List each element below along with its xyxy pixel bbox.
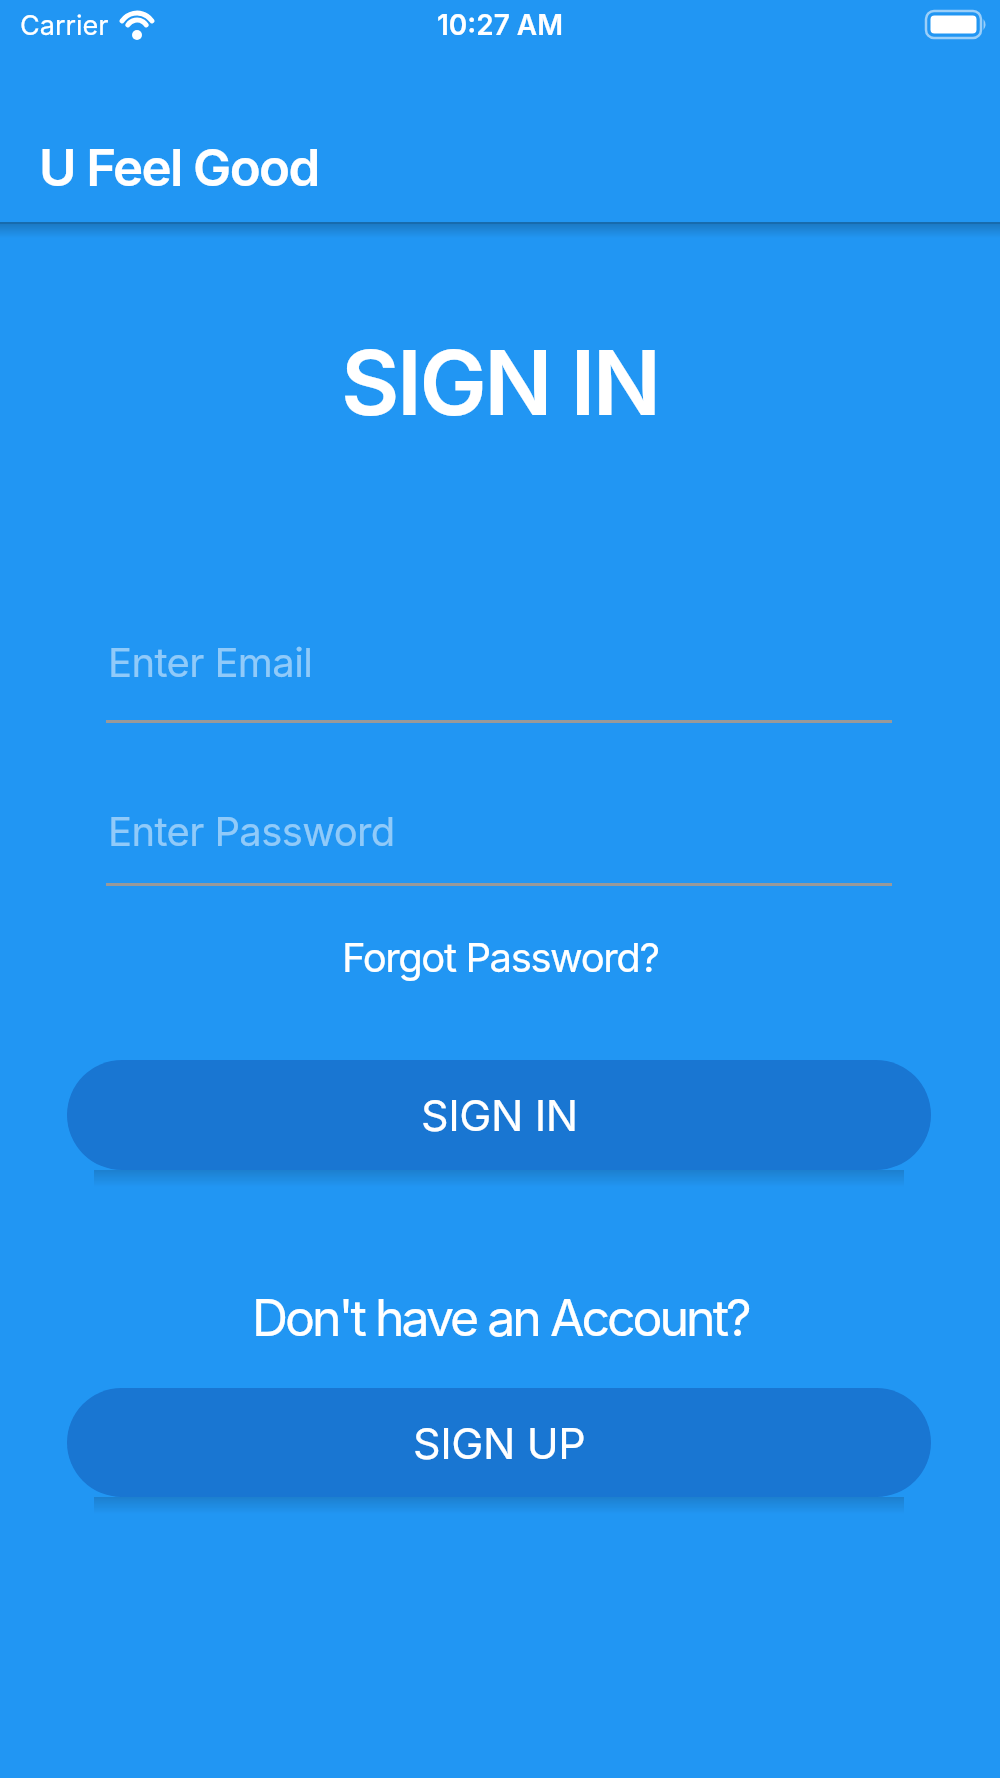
button[interactable]: Enter Email — [106, 620, 892, 723]
staticText: SIGN UP — [413, 1417, 586, 1469]
staticText: Carrier — [20, 9, 109, 42]
button[interactable]: Enter Password — [106, 786, 892, 886]
button[interactable]: Forgot Password? — [342, 933, 659, 981]
staticText: Enter Password — [108, 807, 395, 855]
staticText: Don't have an Account? — [252, 1288, 749, 1348]
button[interactable]: SIGN IN — [67, 1060, 931, 1170]
staticText: SIGN IN — [421, 1089, 578, 1141]
staticText: U Feel Good — [39, 137, 319, 199]
button[interactable]: SIGN UP — [67, 1388, 931, 1497]
staticText: SIGN IN — [341, 328, 659, 437]
staticText: 10:27 AM — [437, 8, 564, 42]
staticText: Enter Email — [108, 638, 313, 686]
